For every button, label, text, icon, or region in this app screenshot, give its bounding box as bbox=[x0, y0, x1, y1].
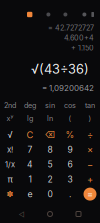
staticText: ( bbox=[68, 114, 71, 123]
staticText: e bbox=[27, 189, 32, 199]
staticText: sin bbox=[45, 101, 55, 110]
button[interactable]: 3 bbox=[60, 172, 80, 187]
button[interactable]: 5 bbox=[40, 157, 60, 172]
button[interactable]: C bbox=[20, 127, 40, 142]
staticText: ◁ bbox=[18, 210, 24, 218]
button[interactable]: 8 bbox=[40, 142, 60, 157]
staticText: 1 bbox=[28, 174, 31, 184]
staticText: 0 bbox=[47, 189, 52, 199]
staticText: xʸ bbox=[6, 114, 13, 123]
staticText: ÷ bbox=[87, 129, 93, 141]
staticText: % bbox=[65, 130, 74, 140]
staticText: + 1.150 bbox=[71, 44, 94, 52]
staticText: C bbox=[26, 129, 33, 141]
staticText: cos bbox=[64, 101, 76, 110]
button[interactable]: cos bbox=[60, 99, 80, 112]
button[interactable]: Recents bbox=[71, 209, 85, 219]
button[interactable]: Home bbox=[43, 209, 57, 219]
staticText: − bbox=[87, 159, 93, 170]
button[interactable]: − bbox=[80, 157, 100, 172]
staticText: ln bbox=[47, 114, 53, 123]
button[interactable]: × bbox=[80, 142, 100, 157]
staticText: √(43÷36) bbox=[31, 61, 89, 77]
button[interactable]: + bbox=[80, 172, 100, 187]
staticText: π bbox=[7, 174, 12, 185]
staticText: + bbox=[87, 174, 93, 185]
staticText: . bbox=[69, 189, 71, 199]
button[interactable]: ⌫ bbox=[40, 127, 60, 142]
button[interactable]: tan bbox=[80, 99, 100, 112]
staticText: 5 bbox=[47, 159, 52, 170]
staticText: √ bbox=[7, 130, 12, 140]
button[interactable]: √ bbox=[0, 127, 20, 142]
staticText: ) bbox=[88, 114, 91, 123]
button[interactable]: ✽ bbox=[0, 187, 20, 201]
staticText: 2nd bbox=[4, 101, 16, 110]
staticText: = 42.7272727 bbox=[48, 24, 94, 32]
staticText: 7 bbox=[27, 144, 32, 155]
staticText: deg bbox=[24, 101, 36, 110]
button[interactable]: ) bbox=[80, 112, 100, 125]
staticText: lg bbox=[27, 114, 33, 123]
button[interactable]: Back bbox=[14, 209, 28, 219]
staticText: x! bbox=[7, 145, 13, 155]
button[interactable]: 0 bbox=[40, 187, 60, 201]
staticText: tan bbox=[85, 101, 95, 110]
button[interactable]: = bbox=[80, 187, 100, 201]
button[interactable]: ln bbox=[40, 112, 60, 125]
staticText: ✽ bbox=[6, 189, 13, 199]
staticText: 1/x bbox=[5, 160, 15, 169]
staticText: 4.600+4 bbox=[64, 34, 94, 42]
staticText: = 1,09200642 bbox=[42, 83, 94, 93]
staticText: 3 bbox=[67, 174, 72, 184]
button[interactable]: 2nd bbox=[0, 99, 20, 112]
staticText: × bbox=[87, 144, 93, 155]
staticText: 8 bbox=[47, 144, 52, 155]
button[interactable]: xʸ bbox=[0, 112, 20, 125]
button[interactable]: 7 bbox=[20, 142, 40, 157]
button[interactable]: % bbox=[60, 127, 80, 142]
staticText: ⌫ bbox=[44, 130, 55, 140]
button[interactable]: e bbox=[20, 187, 40, 201]
button[interactable]: ( bbox=[60, 112, 80, 125]
button[interactable]: 2 bbox=[40, 172, 60, 187]
button[interactable]: π bbox=[0, 172, 20, 187]
button[interactable]: 9 bbox=[60, 142, 80, 157]
button[interactable]: deg bbox=[20, 99, 40, 112]
staticText: 6 bbox=[67, 159, 72, 170]
staticText: 9 bbox=[67, 144, 72, 155]
button[interactable]: 6 bbox=[60, 157, 80, 172]
staticText: 2 bbox=[47, 174, 52, 184]
staticText: = bbox=[87, 188, 93, 200]
button[interactable]: 1 bbox=[20, 172, 40, 187]
button[interactable]: . bbox=[60, 187, 80, 201]
button[interactable]: x! bbox=[0, 142, 20, 157]
button[interactable]: 1/x bbox=[0, 157, 20, 172]
button[interactable]: sin bbox=[40, 99, 60, 112]
button[interactable]: ÷ bbox=[80, 127, 100, 142]
button[interactable]: 4 bbox=[20, 157, 40, 172]
staticText: 4 bbox=[27, 159, 33, 170]
button[interactable]: lg bbox=[20, 112, 40, 125]
